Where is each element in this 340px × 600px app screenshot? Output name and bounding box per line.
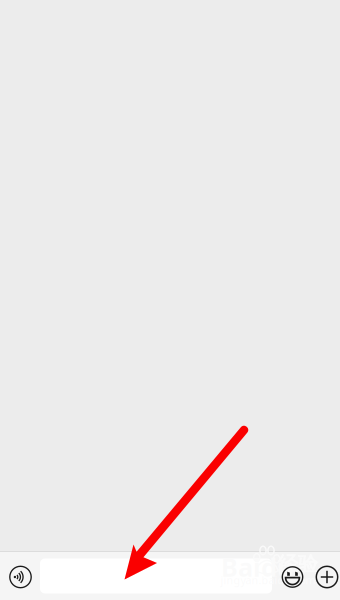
staticText: jingyan.baidu.com (220, 573, 315, 587)
button[interactable]: Emoji (272, 551, 309, 600)
button[interactable]: Voice message (0, 551, 41, 600)
button[interactable]: More (309, 551, 340, 600)
staticText: Baidu (221, 550, 293, 584)
staticText: 经验 (278, 552, 318, 576)
